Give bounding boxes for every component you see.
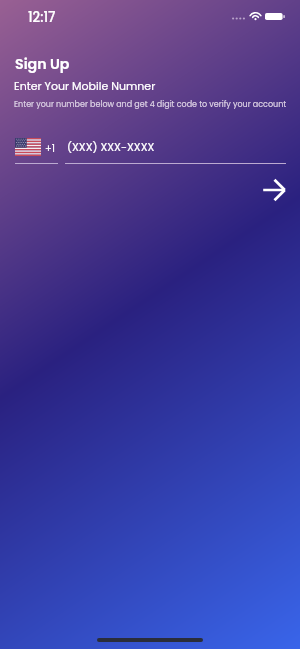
button[interactable]: Continue [256,172,292,208]
staticText: +1 [45,141,56,155]
staticText: Enter Your Mobile Numner [14,78,156,93]
staticText: (XXX) XXX-XXXX [67,139,155,154]
button[interactable]: Select country code [8,132,48,162]
staticText: 12:17 [28,8,56,26]
staticText: Enter your number below and get 4 digit … [14,99,287,110]
staticText: Sign Up [15,54,70,74]
